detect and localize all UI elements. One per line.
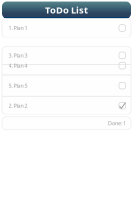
staticText: ToDo List [45,4,88,16]
button[interactable]: 2. Plan 2 [2,97,131,115]
button[interactable]: 3. Plan 3 [2,46,131,64]
button[interactable]: 5. Plan 5 [2,75,131,96]
staticText: Done: 1 [108,120,126,127]
staticText: 5. Plan 5 [8,82,27,89]
staticText: 1. Plan 1 [8,24,27,32]
staticText: 4. Plan 4 [8,62,27,69]
staticText: 3. Plan 3 [8,52,27,59]
button[interactable]: 4. Plan 4 [2,65,131,75]
staticText: 2. Plan 2 [8,102,27,109]
button[interactable]: 1. Plan 1 [2,18,131,37]
